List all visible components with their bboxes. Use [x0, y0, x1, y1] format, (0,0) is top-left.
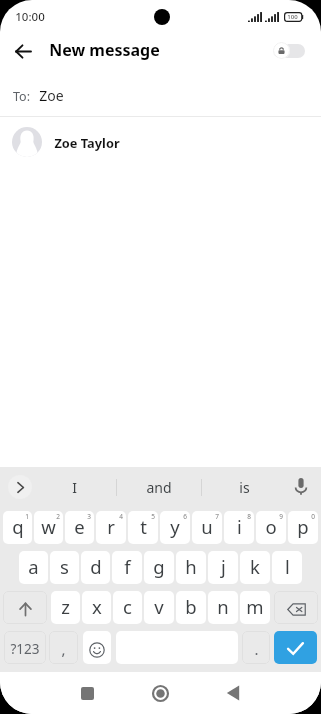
- button[interactable]: .: [242, 631, 270, 664]
- button[interactable]: o: [256, 511, 286, 544]
- staticText: 3: [87, 512, 91, 521]
- staticText: p: [297, 514, 309, 539]
- button[interactable]: x: [82, 591, 111, 624]
- staticText: v: [154, 594, 164, 619]
- staticText: Zoe Taylor: [54, 134, 120, 151]
- button[interactable]: Home: [140, 673, 180, 713]
- staticText: q: [12, 514, 24, 539]
- staticText: 4: [119, 512, 123, 521]
- button[interactable]: g: [144, 551, 174, 584]
- staticText: n: [217, 594, 229, 619]
- staticText: k: [250, 554, 260, 579]
- staticText: c: [123, 594, 132, 619]
- staticText: ?123: [10, 640, 40, 658]
- staticText: s: [60, 554, 69, 579]
- button[interactable]: u: [192, 511, 222, 544]
- button[interactable]: Send: [274, 631, 317, 664]
- button[interactable]: ?123: [4, 631, 46, 664]
- button[interactable]: is: [202, 467, 286, 507]
- staticText: .: [254, 639, 259, 659]
- staticText: 7: [215, 512, 219, 521]
- button[interactable]: Zoe Taylor: [0, 117, 321, 164]
- button[interactable]: and: [117, 467, 201, 507]
- button[interactable]: h: [176, 551, 206, 584]
- button[interactable]: Backspace: [274, 591, 318, 624]
- staticText: a: [28, 554, 39, 579]
- button[interactable]: f: [112, 551, 142, 584]
- staticText: f: [124, 554, 131, 579]
- button[interactable]: t: [128, 511, 158, 544]
- button[interactable]: n: [208, 591, 238, 624]
- button[interactable]: More suggestions: [8, 475, 32, 499]
- button[interactable]: Back: [6, 34, 40, 68]
- button[interactable]: k: [240, 551, 270, 584]
- button[interactable]: ,: [49, 631, 78, 664]
- staticText: e: [74, 514, 85, 539]
- button[interactable]: s: [50, 551, 79, 584]
- button[interactable]: m: [240, 591, 270, 624]
- button[interactable]: j: [208, 551, 238, 584]
- button[interactable]: p: [288, 511, 318, 544]
- button[interactable]: e: [65, 511, 94, 544]
- staticText: r: [107, 514, 115, 539]
- staticText: z: [61, 594, 70, 619]
- button[interactable]: l: [272, 551, 302, 584]
- button[interactable]: End-to-end encryption: [273, 42, 305, 59]
- button[interactable]: Shift: [3, 591, 47, 624]
- button[interactable]: Recents: [67, 673, 107, 713]
- staticText: j: [221, 554, 226, 579]
- staticText: 0: [311, 512, 315, 521]
- staticText: 100: [287, 13, 298, 21]
- staticText: d: [90, 554, 102, 579]
- button[interactable]: y: [160, 511, 190, 544]
- staticText: i: [237, 514, 242, 539]
- button[interactable]: Back: [213, 673, 253, 713]
- staticText: 5: [151, 512, 155, 521]
- button[interactable]: v: [144, 591, 174, 624]
- staticText: t: [140, 514, 147, 539]
- staticText: Zoe: [39, 86, 64, 105]
- staticText: l: [285, 554, 290, 579]
- staticText: b: [185, 594, 197, 619]
- staticText: I: [72, 478, 77, 497]
- staticText: 1: [25, 512, 29, 521]
- staticText: is: [239, 478, 250, 497]
- staticText: 10:00: [15, 9, 45, 25]
- staticText: x: [92, 594, 102, 619]
- button[interactable]: Emoji: [83, 631, 111, 664]
- staticText: w: [41, 514, 56, 539]
- staticText: y: [170, 514, 180, 539]
- button[interactable]: i: [224, 511, 254, 544]
- button[interactable]: a: [19, 551, 48, 584]
- staticText: g: [153, 554, 165, 579]
- button[interactable]: I: [33, 467, 116, 507]
- button[interactable]: b: [176, 591, 206, 624]
- staticText: To:: [13, 88, 30, 105]
- staticText: ,: [61, 639, 66, 659]
- staticText: u: [201, 514, 213, 539]
- staticText: 8: [247, 512, 251, 521]
- button[interactable]: Voice input: [288, 473, 314, 499]
- button[interactable]: d: [81, 551, 110, 584]
- staticText: 9: [279, 512, 283, 521]
- staticText: m: [246, 594, 264, 619]
- staticText: h: [185, 554, 197, 579]
- staticText: 6: [183, 512, 187, 521]
- staticText: 2: [56, 512, 60, 521]
- button[interactable]: c: [113, 591, 142, 624]
- button[interactable]: r: [96, 511, 126, 544]
- staticText: and: [146, 478, 172, 497]
- button[interactable]: w: [34, 511, 63, 544]
- staticText: New message: [49, 39, 160, 61]
- button[interactable]: z: [51, 591, 80, 624]
- staticText: o: [265, 514, 277, 539]
- button[interactable]: q: [3, 511, 32, 544]
